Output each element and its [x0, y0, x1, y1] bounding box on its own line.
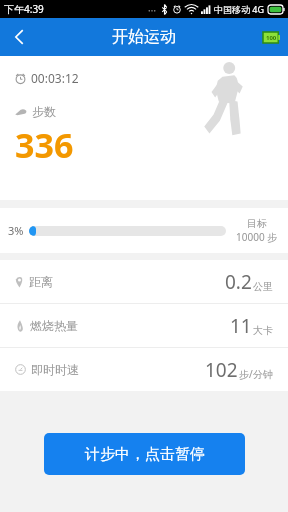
staticText: 公里 — [253, 280, 273, 293]
staticText: 11 — [230, 313, 252, 339]
staticText: 0.2 — [225, 269, 252, 295]
button[interactable]: 即时时速 — [0, 348, 288, 391]
staticText: 336 — [15, 122, 74, 168]
staticText: 燃烧热量 — [30, 318, 78, 333]
staticText: 步数 — [32, 104, 56, 119]
staticText: 目标 — [247, 217, 267, 230]
staticText: 大卡 — [253, 324, 273, 337]
staticText: 10000 步 — [236, 230, 278, 244]
button[interactable]: 返回 — [0, 18, 38, 56]
staticText: 即时时速 — [31, 362, 79, 377]
button[interactable]: 燃烧热量 — [0, 304, 288, 347]
button[interactable]: 计步中，点击暂停 — [44, 433, 245, 475]
staticText: 距离 — [29, 274, 53, 289]
staticText: 3% — [8, 223, 24, 238]
staticText: 00:03:12 — [31, 70, 79, 86]
staticText: 步/分钟 — [239, 367, 273, 381]
button[interactable]: 距离 — [0, 260, 288, 303]
staticText: 100 — [266, 34, 277, 42]
staticText: 102 — [205, 357, 238, 383]
button[interactable]: 电量 — [263, 32, 280, 43]
staticText: 开始运动 — [112, 27, 176, 47]
staticText: 计步中，点击暂停 — [85, 445, 205, 464]
staticText: 下午4:39 — [4, 2, 44, 16]
staticText: 中国移动 4G — [214, 3, 265, 15]
